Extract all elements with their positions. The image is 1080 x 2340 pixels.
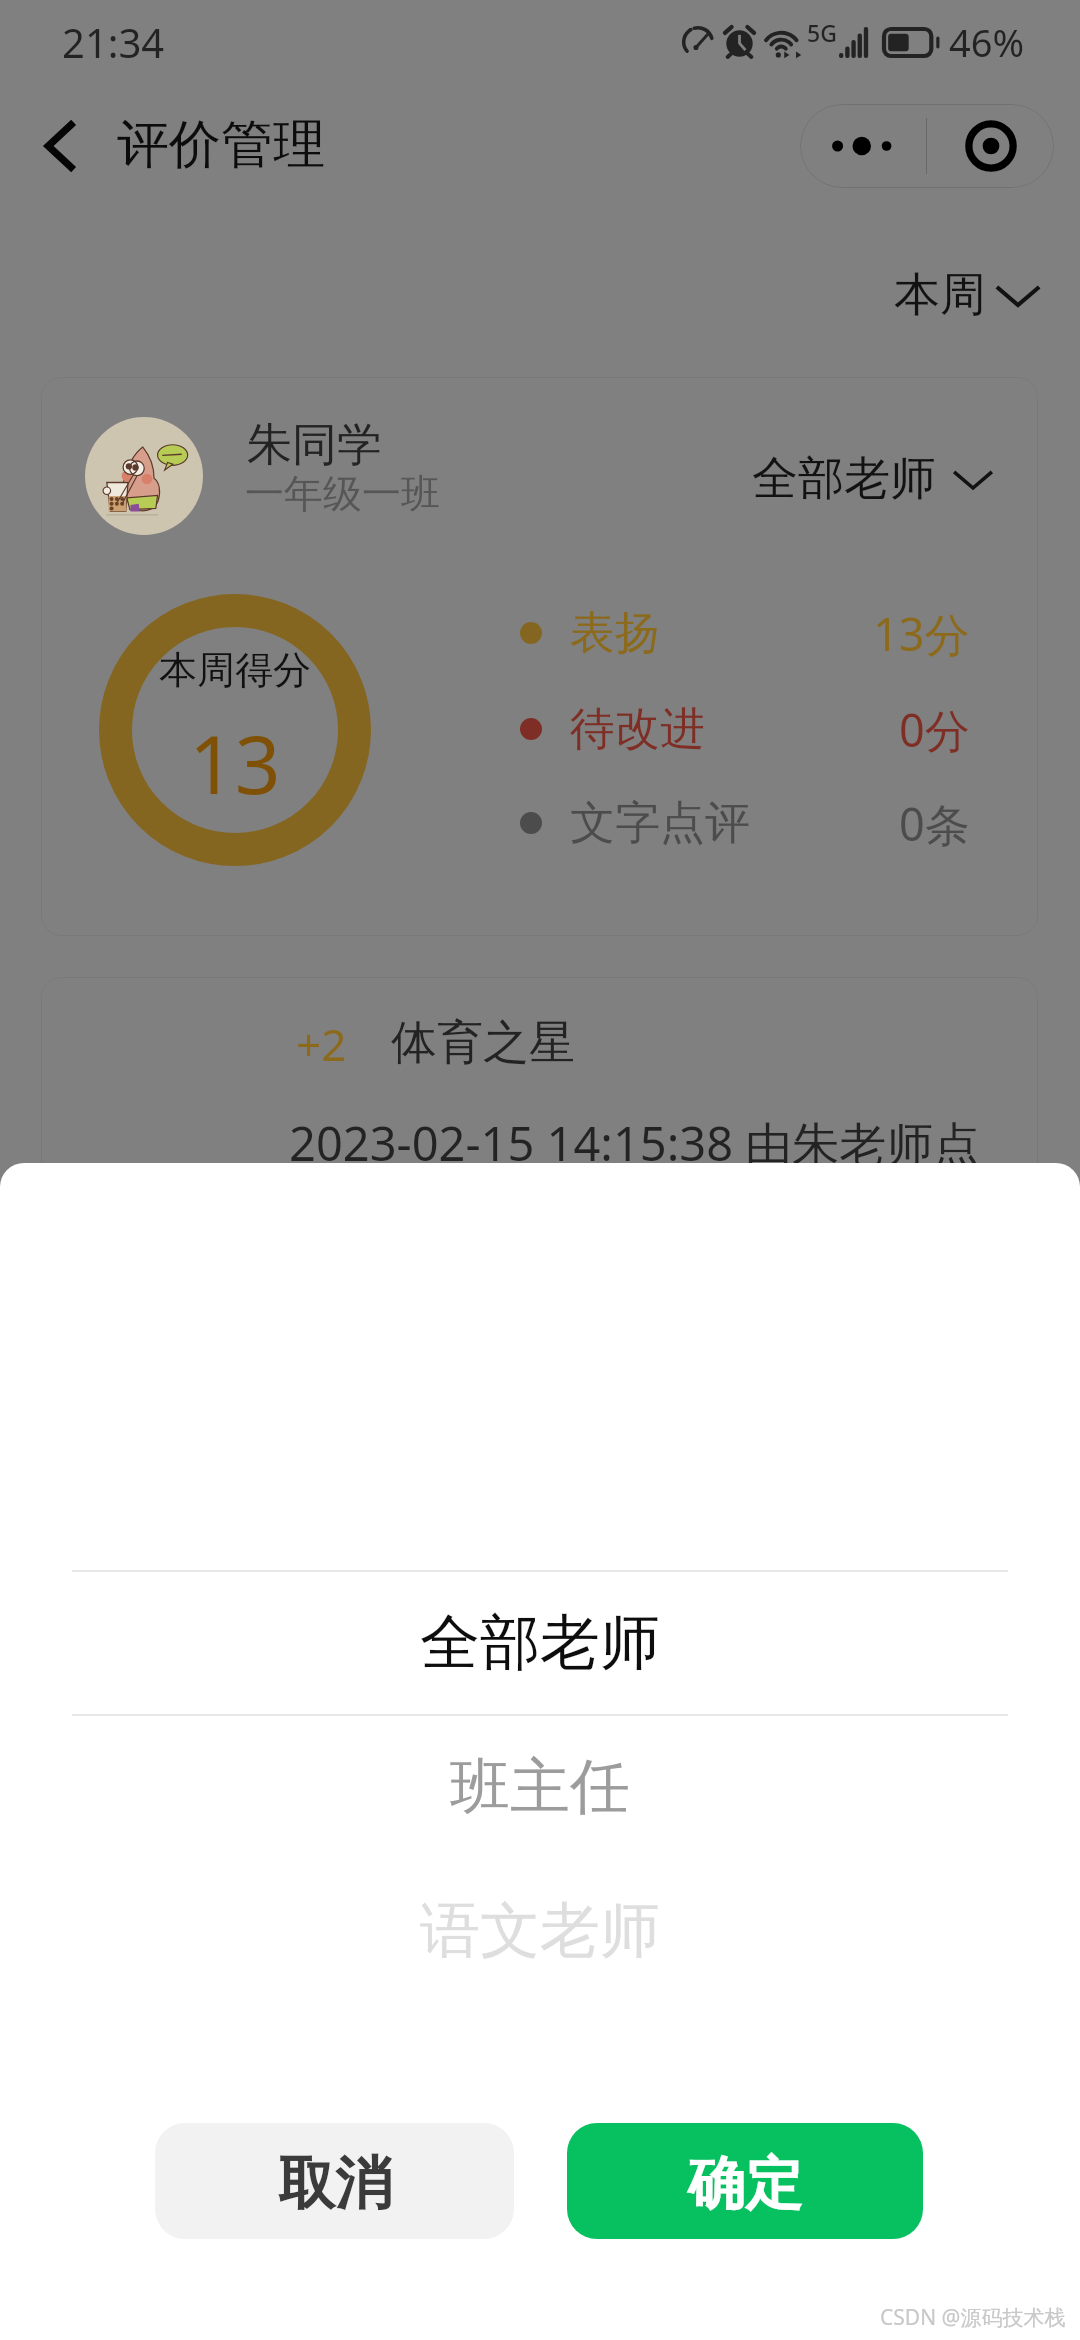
staticText: 0分	[899, 699, 970, 760]
staticText: 2023-02-15 14:15:38 由朱老师点	[289, 1111, 981, 1175]
staticText: 本周	[894, 266, 986, 324]
staticText: 班主任	[450, 1749, 630, 1825]
staticText: 21:34	[62, 15, 165, 69]
staticText: 确定	[688, 2148, 802, 2220]
button[interactable]: 语文老师	[0, 1859, 1080, 2003]
staticText: 表扬	[570, 605, 660, 662]
button[interactable]: 全部老师	[0, 1571, 1080, 1715]
button[interactable]: More options	[800, 104, 926, 188]
staticText: 评价管理	[117, 112, 325, 178]
button[interactable]: +2	[41, 977, 1038, 1277]
staticText: 5G	[807, 17, 837, 48]
staticText: 全部老师	[420, 1605, 660, 1681]
staticText: 全部老师	[752, 450, 936, 508]
staticText: 13	[189, 708, 281, 817]
button[interactable]: Back	[16, 103, 102, 189]
staticText: 本周得分	[159, 646, 311, 694]
staticText: 朱同学	[247, 417, 382, 474]
staticText: 一年级一班	[245, 469, 440, 518]
staticText: 取消	[278, 2148, 392, 2220]
staticText: 待改进	[570, 701, 705, 758]
button[interactable]: 全部老师	[752, 450, 998, 508]
staticText: 体育之星	[391, 1014, 575, 1072]
button[interactable]: 班主任	[0, 1715, 1080, 1859]
staticText: CSDN @源码技术栈	[880, 2303, 1066, 2332]
button[interactable]: 取消	[155, 2123, 514, 2239]
staticText: 46%	[949, 16, 1025, 68]
button[interactable]: 确定	[567, 2123, 923, 2239]
button[interactable]: 朱同学	[41, 377, 1038, 936]
staticText: 13分	[873, 603, 970, 664]
button[interactable]: 本周	[874, 246, 1066, 344]
staticText: 语文老师	[420, 1893, 660, 1969]
staticText: 0条	[899, 793, 970, 854]
staticText: +2	[296, 1014, 347, 1074]
staticText: 文字点评	[570, 795, 750, 852]
button[interactable]: Close mini program	[927, 104, 1054, 188]
